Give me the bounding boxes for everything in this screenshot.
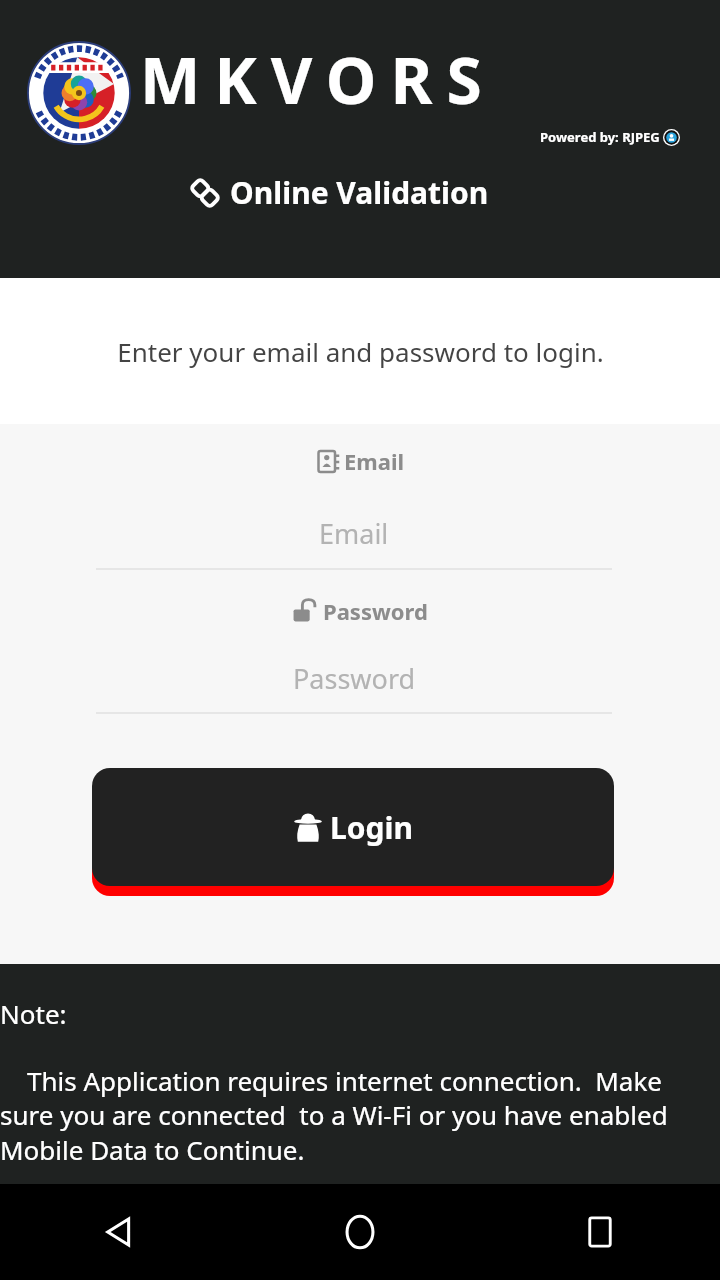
staticText: Email: [344, 446, 405, 476]
button[interactable]: Email: [96, 496, 612, 570]
staticText: Online Validation: [230, 172, 489, 213]
staticText: MKVORS: [140, 36, 496, 123]
staticText: Email: [319, 515, 389, 552]
button[interactable]: Recent apps: [568, 1200, 632, 1264]
button[interactable]: Login: [92, 768, 614, 886]
button[interactable]: Password: [96, 642, 612, 714]
staticText: Login: [330, 807, 413, 848]
button[interactable]: Home: [328, 1200, 392, 1264]
staticText: Note:: [0, 996, 67, 1031]
staticText: Enter your email and password to login.: [117, 334, 604, 369]
button[interactable]: Back: [88, 1200, 152, 1264]
staticText: Password: [323, 596, 428, 626]
staticText: Powered by: RJPEG: [540, 128, 660, 146]
staticText: This Application requires internet conne…: [0, 1063, 720, 1168]
staticText: Password: [293, 660, 416, 697]
